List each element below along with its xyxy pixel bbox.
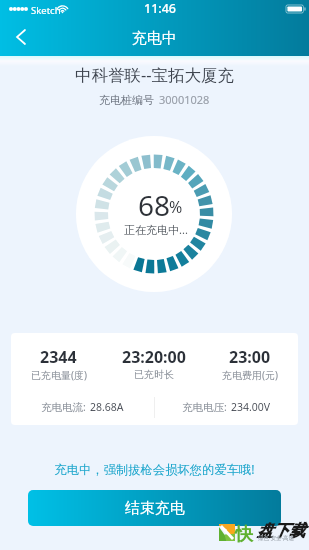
staticText: 28.68A	[90, 400, 124, 414]
staticText: 23:20:00	[122, 346, 186, 368]
staticText: 11:46	[144, 0, 177, 17]
button[interactable]: 结束充电	[28, 490, 281, 526]
staticText: 充电中	[132, 29, 177, 48]
staticText: 68	[138, 186, 171, 224]
button[interactable]: Back	[6, 22, 36, 52]
staticText: 30001028	[159, 92, 210, 107]
staticText: 正在充电中...	[124, 222, 188, 237]
staticText: 结束充电	[125, 499, 185, 518]
staticText: 234.00V	[231, 400, 271, 414]
staticText: %	[169, 196, 183, 218]
staticText: 已充时长	[134, 368, 174, 381]
staticText: 23:00	[229, 346, 271, 368]
staticText: 充电电压:	[182, 400, 227, 414]
staticText: 绿色·安全·高速	[258, 534, 294, 542]
staticText: 充电电流:	[41, 400, 86, 414]
staticText: 2344	[40, 346, 77, 368]
staticText: 快	[235, 523, 253, 546]
staticText: 充电桩编号	[99, 93, 154, 107]
staticText: 充电费用(元)	[222, 368, 278, 382]
staticText: 已充电量(度)	[31, 368, 87, 382]
staticText: Sketch	[31, 4, 61, 17]
staticText: 中科誉联--宝拓大厦充	[0, 63, 309, 86]
staticText: 盘下载	[257, 521, 305, 541]
staticText: 充电中，强制拔枪会损坏您的爱车哦!	[0, 461, 309, 478]
